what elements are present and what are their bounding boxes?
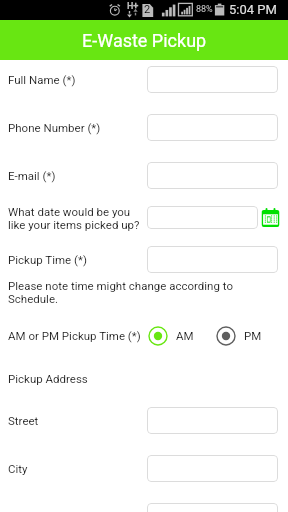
button[interactable] (147, 66, 278, 93)
button[interactable] (147, 206, 258, 229)
staticText: like your items picked up? (8, 218, 140, 231)
staticText: City (8, 462, 28, 475)
staticText: PM (244, 329, 262, 342)
staticText: AM (176, 329, 194, 342)
button[interactable]: PM (216, 326, 236, 346)
staticText: 5:04 PM (229, 2, 277, 17)
staticText: Phone Number (*) (8, 121, 101, 134)
staticText: AM or PM Pickup Time (*) (8, 329, 141, 342)
button[interactable] (147, 407, 278, 434)
staticText: What date would be you (8, 205, 131, 218)
staticText: Full Name (*) (8, 73, 76, 86)
staticText: Street (8, 414, 39, 427)
button[interactable]: AM selected (148, 326, 168, 346)
button[interactable] (147, 246, 278, 273)
staticText: 2 (144, 3, 151, 16)
button[interactable] (147, 114, 278, 141)
staticText: + (133, 0, 139, 12)
button[interactable]: Pick date (261, 208, 280, 227)
button[interactable] (147, 503, 278, 512)
staticText: E-Waste Pickup (82, 30, 207, 51)
staticText: Pickup Time (*) (8, 253, 87, 266)
staticText: Schedule. (8, 292, 59, 305)
button[interactable] (147, 455, 278, 482)
staticText: Pickup Address (8, 372, 88, 385)
staticText: H (127, 1, 134, 12)
staticText: Please note time might change according … (8, 279, 233, 292)
staticText: E-mail (*) (8, 169, 56, 182)
button[interactable] (147, 162, 278, 189)
staticText: 88% (196, 4, 213, 15)
